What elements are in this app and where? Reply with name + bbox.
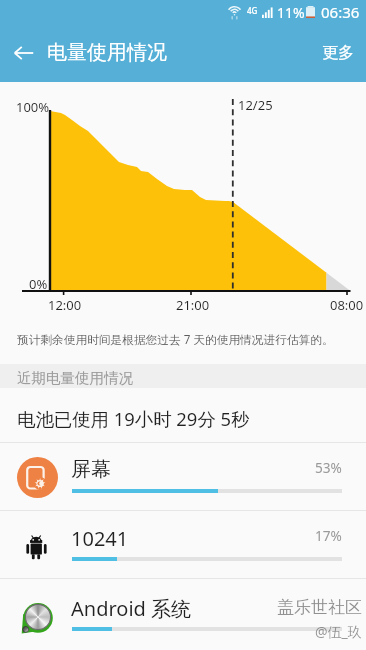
button[interactable]: Android 系统 xyxy=(0,578,366,646)
staticText: 10241 xyxy=(71,525,129,552)
staticText: @伍_玖 xyxy=(315,622,362,641)
staticText: 11% xyxy=(277,3,305,22)
staticText: 预计剩余使用时间是根据您过去 7 天的使用情况进行估算的。 xyxy=(17,331,356,347)
button[interactable]: 更多 xyxy=(308,33,366,73)
staticText: 近期电量使用情况 xyxy=(17,369,133,387)
staticText: 06:36 xyxy=(321,2,360,22)
staticText: 17% xyxy=(315,526,342,545)
button[interactable]: Back xyxy=(4,33,44,73)
staticText: 21:00 xyxy=(176,296,210,314)
staticText: 更多 xyxy=(322,43,354,63)
staticText: 0% xyxy=(29,275,48,293)
staticText: 12/25 xyxy=(238,96,273,114)
staticText: 盖乐世社区 xyxy=(277,597,362,618)
staticText: Android 系统 xyxy=(71,595,192,622)
button[interactable]: 屏幕 xyxy=(0,442,366,510)
staticText: 08:00 xyxy=(330,296,364,314)
staticText: 53% xyxy=(315,458,342,477)
staticText: 屏幕 xyxy=(71,457,111,482)
button[interactable]: 10241 xyxy=(0,510,366,578)
staticText: 4G xyxy=(247,5,258,16)
staticText: 电池已使用 19小时 29分 5秒 xyxy=(17,406,250,431)
staticText: 100% xyxy=(16,98,50,116)
staticText: 12:00 xyxy=(48,296,82,314)
staticText: 电量使用情况 xyxy=(47,40,167,65)
